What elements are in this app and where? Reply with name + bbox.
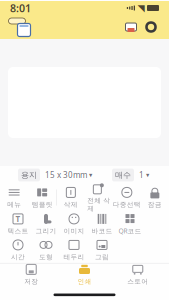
button[interactable]: QR코드 [116,212,144,236]
button[interactable]: 저장 [9,263,53,285]
button[interactable]: 전체 삭제 [85,185,113,209]
button[interactable]: 시간 [4,238,32,262]
button[interactable]: 테두리 [60,238,88,262]
staticText: 그림 [95,253,109,261]
button[interactable]: 15 x 30mm [43,169,94,181]
button[interactable]: 템플릿 [28,185,56,209]
staticText: ▾ [146,171,149,179]
staticText: 시간 [11,253,25,261]
staticText: 15 x 30mm [45,170,87,180]
staticText: 스토어 [127,277,148,286]
staticText: ▾ [89,171,92,179]
staticText: 잠금 [148,200,162,209]
staticText: 텍스트 [7,227,28,235]
staticText: 도형 [39,253,53,261]
button[interactable]: 그리기 [32,212,60,236]
staticText: 그리기 [35,227,56,235]
staticText: 이미지 [63,227,84,235]
staticText: 전체 삭제 [87,196,110,213]
button[interactable]: 1 [137,169,151,181]
staticText: 바코드 [91,227,112,235]
staticText: 1 [139,170,144,180]
button[interactable]: 인쇄 [62,263,106,285]
staticText: 용지 [21,170,37,180]
button[interactable]: 도형 [32,238,60,262]
button[interactable]: T [4,212,32,236]
staticText: 다중선택 [113,200,141,209]
staticText: 저장 [24,277,38,286]
staticText: 인쇄 [77,277,91,286]
button[interactable]: 다중선택 [113,185,141,209]
staticText: 매수 [115,170,131,180]
button[interactable]: 그림 [88,238,116,262]
button[interactable]: 잠금 [141,185,169,209]
staticText: 테두리 [63,253,84,261]
button[interactable]: 바코드 [88,212,116,236]
button[interactable]: Settings [141,17,161,37]
button[interactable]: Printer [121,17,141,37]
button[interactable]: 이미지 [60,212,88,236]
staticText: T [15,214,20,224]
staticText: 8:01 [10,1,31,15]
staticText: ◥ [137,3,144,13]
staticText: 템플릿 [32,200,53,209]
staticText: 삭제 [64,200,78,209]
button[interactable]: 삭제 [57,185,85,209]
staticText: 메뉴 [7,200,21,209]
button[interactable]: 메뉴 [0,185,28,209]
button[interactable]: 스토어 [116,263,160,285]
staticText: QR코드 [118,227,141,235]
